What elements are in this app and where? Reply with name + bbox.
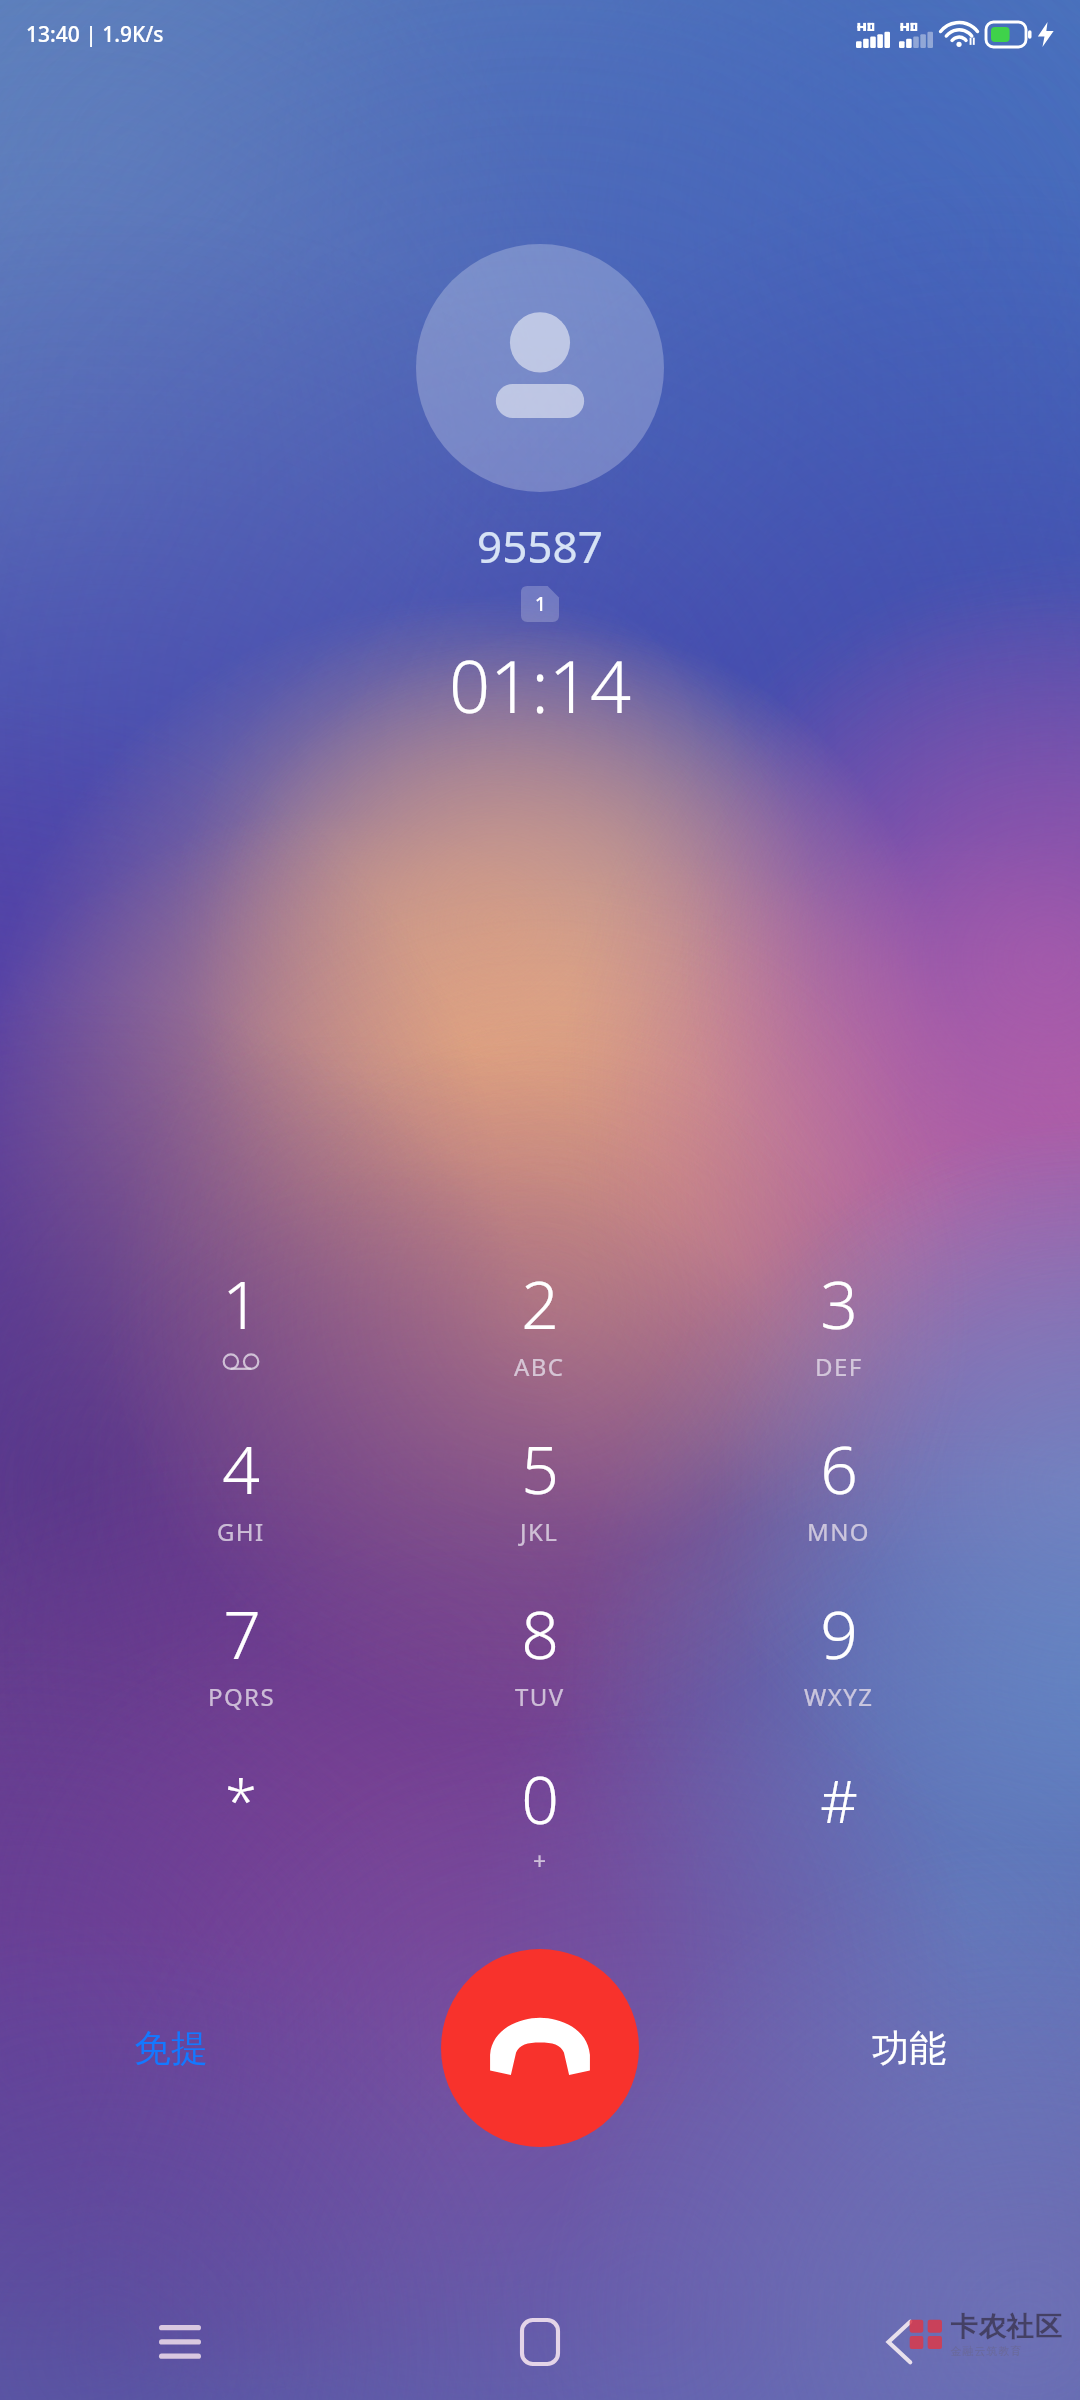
- button[interactable]: 2: [390, 1258, 689, 1423]
- staticText: 0: [521, 1753, 559, 1843]
- staticText: PQRS: [208, 1680, 275, 1713]
- staticText: 金融云筑教育: [950, 2344, 1022, 2358]
- button[interactable]: 7: [92, 1588, 390, 1753]
- staticText: 1: [222, 1258, 260, 1348]
- staticText: 8: [521, 1588, 559, 1678]
- staticText: 5: [521, 1423, 559, 1513]
- staticText: 6: [820, 1423, 858, 1513]
- button[interactable]: 5: [390, 1423, 689, 1588]
- staticText: 01:14: [449, 636, 632, 734]
- staticText: 13:40 | 1.9K/s: [26, 20, 164, 49]
- staticText: 1: [535, 591, 546, 617]
- button[interactable]: 1: [92, 1258, 390, 1423]
- staticText: ABC: [514, 1350, 565, 1383]
- button[interactable]: 6: [689, 1423, 988, 1588]
- button[interactable]: 9: [689, 1588, 988, 1753]
- staticText: MNO: [807, 1515, 870, 1548]
- button[interactable]: Recents: [0, 2284, 360, 2400]
- staticText: 卡农社区: [950, 2310, 1062, 2344]
- button[interactable]: 4: [92, 1423, 390, 1588]
- staticText: WXYZ: [804, 1680, 874, 1713]
- staticText: GHI: [217, 1515, 265, 1548]
- button[interactable]: Back: [720, 2284, 1080, 2400]
- button[interactable]: 免提: [118, 2011, 224, 2086]
- staticText: JKL: [520, 1515, 559, 1548]
- button[interactable]: Home: [360, 2284, 720, 2400]
- button[interactable]: #: [689, 1753, 988, 1918]
- button[interactable]: *: [92, 1753, 390, 1918]
- button[interactable]: 功能: [856, 2011, 962, 2086]
- staticText: 4: [222, 1423, 260, 1513]
- button[interactable]: 3: [689, 1258, 988, 1423]
- button[interactable]: End call: [441, 1949, 639, 2147]
- staticText: *: [225, 1761, 257, 1840]
- staticText: 3: [820, 1258, 858, 1348]
- staticText: +: [533, 1845, 547, 1876]
- staticText: 免提: [134, 2025, 208, 2072]
- staticText: 2: [521, 1258, 559, 1348]
- button[interactable]: 8: [390, 1588, 689, 1753]
- button[interactable]: 0: [390, 1753, 689, 1918]
- staticText: #: [820, 1761, 858, 1840]
- staticText: 功能: [872, 2025, 946, 2072]
- staticText: 9: [820, 1588, 858, 1678]
- staticText: 7: [223, 1588, 261, 1678]
- staticText: DEF: [815, 1350, 863, 1383]
- staticText: 95587: [477, 516, 603, 576]
- staticText: TUV: [515, 1680, 565, 1713]
